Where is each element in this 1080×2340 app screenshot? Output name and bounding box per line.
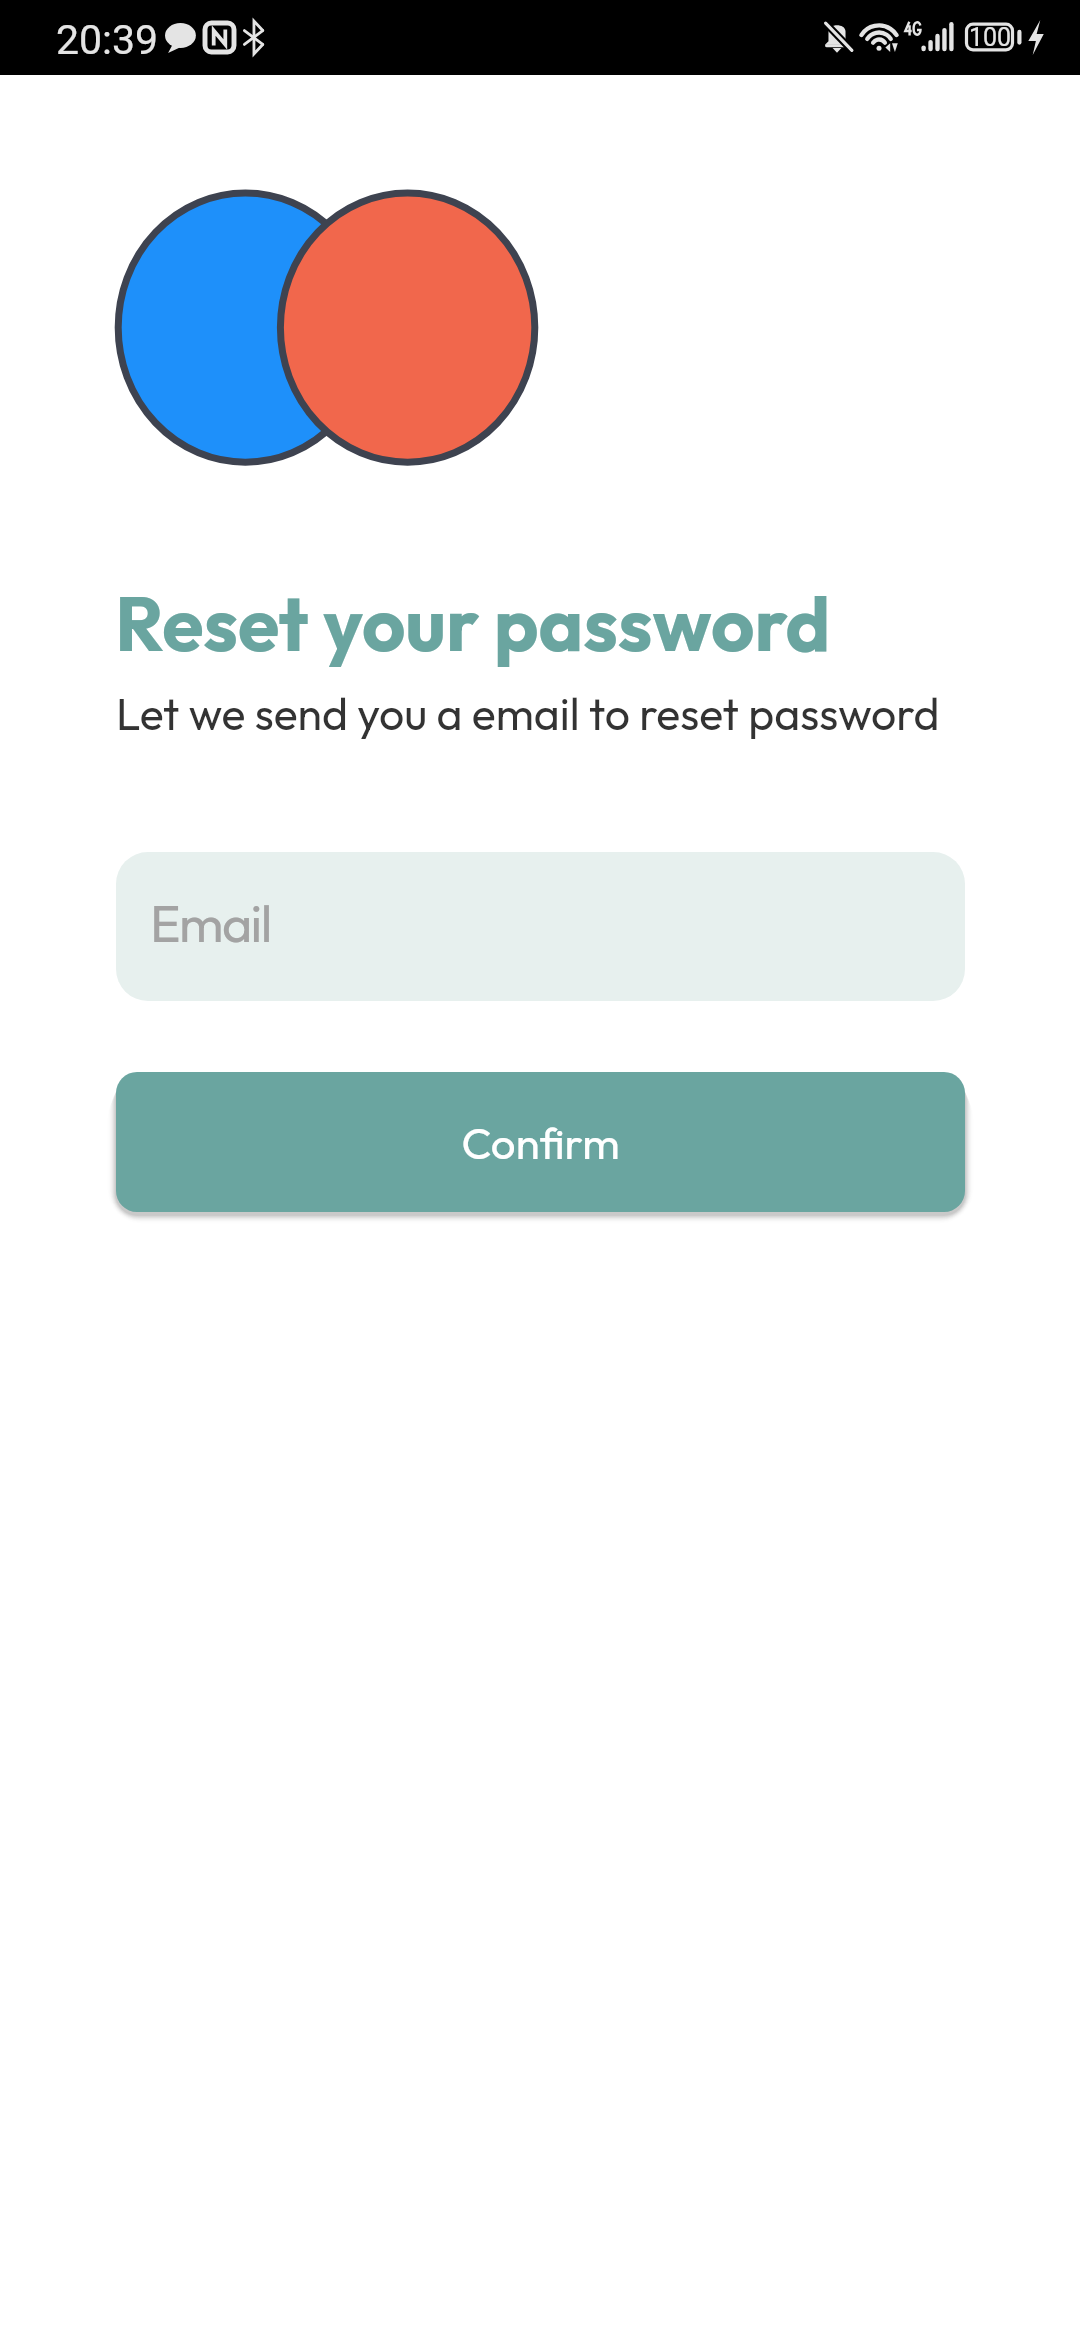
staticText: Let we send you a email to reset passwor… <box>116 685 940 741</box>
staticText: Reset your password <box>115 576 831 671</box>
staticText: Email <box>150 890 271 956</box>
staticText: 20:39 <box>56 16 159 64</box>
button[interactable]: Confirm <box>116 1072 965 1212</box>
button[interactable]: Email <box>116 852 965 1001</box>
staticText: Confirm <box>461 1115 620 1170</box>
other: App logo <box>100 180 560 480</box>
staticText: 100 <box>969 23 1012 52</box>
